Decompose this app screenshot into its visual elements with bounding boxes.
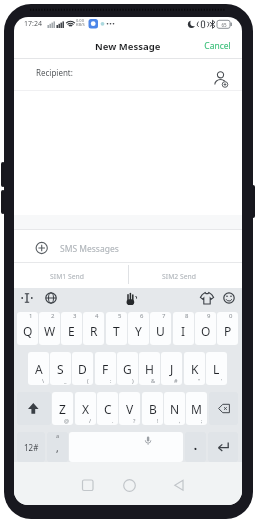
button[interactable]: . xyxy=(185,432,206,462)
staticText: X xyxy=(82,401,90,417)
staticText: J xyxy=(170,361,174,377)
staticText: # xyxy=(174,377,178,384)
staticText: SMS Messages xyxy=(60,243,119,255)
staticText: 65 xyxy=(221,22,227,28)
staticText: 0.00 xyxy=(76,18,84,23)
staticText: a xyxy=(56,432,60,439)
staticText: ( xyxy=(87,377,89,384)
staticText: SIM2 Send xyxy=(162,272,196,281)
button[interactable]: N xyxy=(164,392,185,425)
staticText: P xyxy=(224,323,232,339)
staticText: & xyxy=(151,377,156,384)
staticText: / xyxy=(89,417,92,424)
staticText: L xyxy=(213,361,220,377)
button[interactable]: Y xyxy=(128,312,149,345)
button[interactable]: X xyxy=(75,392,96,425)
staticText: I xyxy=(181,323,186,339)
staticText: : xyxy=(110,377,112,384)
button[interactable]: H xyxy=(139,352,160,385)
staticText: 3 xyxy=(73,312,77,320)
staticText: Recipient: xyxy=(36,67,73,78)
staticText: SIM1 Send xyxy=(50,272,84,281)
staticText: 12# xyxy=(24,442,39,453)
button[interactable] xyxy=(17,392,51,425)
staticText: 8 xyxy=(185,312,189,320)
button[interactable]: Cancel xyxy=(200,38,234,54)
staticText: . xyxy=(112,417,114,424)
staticText: T xyxy=(113,323,120,339)
staticText: S xyxy=(57,361,64,377)
staticText: O xyxy=(201,323,211,339)
staticText: E xyxy=(68,323,75,339)
staticText: New Message xyxy=(95,40,161,53)
button[interactable]: M xyxy=(186,392,207,425)
button[interactable]: SIM2 Send xyxy=(126,266,232,286)
button[interactable]: , xyxy=(47,432,68,462)
staticText: \ xyxy=(42,377,45,384)
staticText: 4 xyxy=(95,312,99,320)
button[interactable]: U xyxy=(150,312,171,345)
staticText: @ xyxy=(64,417,69,424)
staticText: ! xyxy=(157,417,159,424)
button[interactable]: L xyxy=(206,352,227,385)
button[interactable] xyxy=(209,392,238,425)
staticText: H xyxy=(145,361,154,377)
staticText: F xyxy=(102,361,109,377)
button[interactable]: V xyxy=(119,392,140,425)
button[interactable]: K xyxy=(184,352,205,385)
staticText: M xyxy=(191,401,202,417)
staticText: N xyxy=(170,401,180,417)
staticText: ? xyxy=(133,417,136,424)
staticText: U xyxy=(156,323,165,339)
staticText: , xyxy=(56,441,59,455)
button[interactable]: J xyxy=(161,352,182,385)
staticText: 7 xyxy=(162,312,166,320)
button[interactable]: T xyxy=(106,312,127,345)
button[interactable]: I xyxy=(173,312,194,345)
staticText: W xyxy=(44,323,56,339)
staticText: 1 xyxy=(29,312,33,320)
staticText: D xyxy=(78,361,87,377)
staticText: Cancel xyxy=(204,40,231,52)
button[interactable]: SIM1 Send xyxy=(14,266,120,286)
staticText: _ xyxy=(64,377,67,384)
button[interactable]: C xyxy=(97,392,118,425)
staticText: V xyxy=(126,401,134,417)
staticText: . xyxy=(194,439,197,451)
button[interactable]: S xyxy=(50,352,71,385)
staticText: ) xyxy=(132,377,134,384)
button[interactable]: G xyxy=(117,352,138,385)
button[interactable] xyxy=(208,432,238,462)
button[interactable]: W xyxy=(39,312,60,345)
button[interactable]: P xyxy=(217,312,238,345)
button[interactable]: R xyxy=(83,312,104,345)
staticText: K xyxy=(191,361,199,377)
staticText: Y xyxy=(135,323,142,339)
button[interactable]: E xyxy=(61,312,82,345)
staticText: G xyxy=(123,361,132,377)
staticText: KB/S xyxy=(76,22,85,27)
button[interactable]: D xyxy=(72,352,93,385)
button[interactable]: Z xyxy=(52,392,73,425)
button[interactable] xyxy=(69,432,183,462)
staticText: R xyxy=(90,323,98,339)
staticText: A xyxy=(35,361,43,377)
staticText: 9 xyxy=(207,312,211,320)
staticText: 17:24 xyxy=(24,19,42,29)
staticText: " xyxy=(198,377,201,384)
button[interactable]: 12# xyxy=(17,432,45,462)
button[interactable]: F xyxy=(95,352,116,385)
staticText: 6 xyxy=(140,312,144,320)
staticText: B xyxy=(149,401,157,417)
button[interactable]: O xyxy=(195,312,216,345)
staticText: Z xyxy=(59,401,66,417)
staticText: , xyxy=(179,417,181,424)
staticText: 5 xyxy=(118,312,122,320)
button[interactable]: A xyxy=(28,352,49,385)
button[interactable]: B xyxy=(142,392,163,425)
staticText: C xyxy=(104,401,112,417)
staticText: Q xyxy=(23,323,33,339)
staticText: 2 xyxy=(51,312,55,320)
staticText: ' xyxy=(221,377,223,384)
button[interactable]: Q xyxy=(17,312,38,345)
